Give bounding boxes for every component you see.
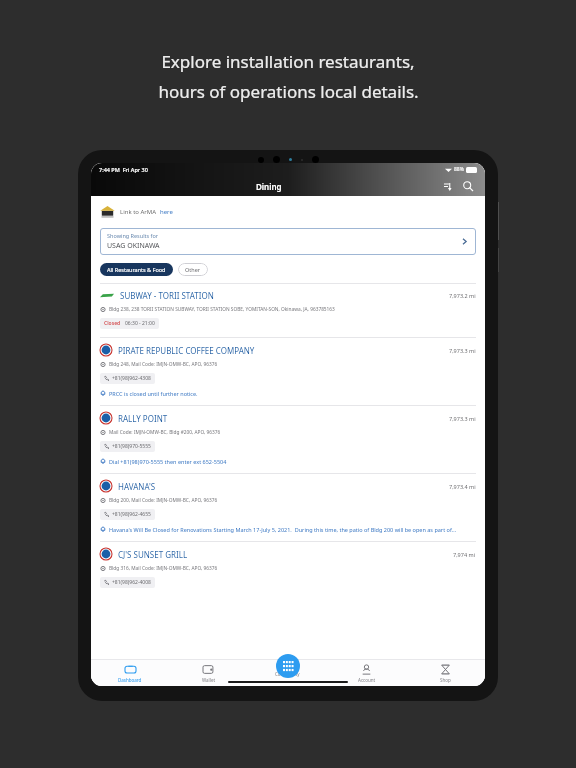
button[interactable]: Account [327,660,406,686]
staticText: Bldg 316, Mail Code: IMJN-OMW-BC, APO, 9… [109,565,218,572]
button[interactable]: RALLY POINT [91,406,485,473]
staticText: 7,973.3 mi [449,415,476,422]
button[interactable]: Sort [439,178,455,194]
button[interactable]: HAVANA'S [91,474,485,541]
button[interactable]: Showing Results for [100,228,476,255]
staticText: Mail Code: IMJN-OMW-BC, Bldg #200, APO, … [109,429,221,436]
button[interactable]: SUBWAY - TORII STATION [91,284,485,337]
staticText: CJ'S SUNSET GRILL [118,549,188,560]
staticText: Bldg 200, Mail Code: IMJN-OMW-BC, APO, 9… [109,497,218,504]
staticText: HAVANA'S [118,481,156,492]
staticText: hours of operations local details. [158,80,419,103]
staticText: Bldg 248, Mail Code: IMJN-OMW-BC, APO, 9… [109,361,218,368]
staticText: PRCC is closed until further notice. [109,390,198,397]
staticText: +81(98)962-4308 [112,375,151,382]
staticText: Account [358,677,376,683]
staticText: 06:30 - 21:00 [125,320,155,327]
button[interactable]: Community [248,660,327,686]
staticText: 7:44 PM Fri Apr 30 [99,166,148,173]
button[interactable]: +81(98)962-4008 [100,577,155,588]
staticText: Shop [440,677,451,683]
button[interactable]: +81(98)962-4655 [100,509,155,520]
button[interactable]: Dashboard [91,660,169,686]
staticText: SUBWAY - TORII STATION [120,290,214,301]
staticText: Dial +81(98)970-5555 then enter ext 652-… [109,458,227,465]
button[interactable]: Shop [406,660,485,686]
staticText: +81(98)970-5555 [112,443,151,450]
staticText: +81(98)962-4008 [112,579,151,586]
button[interactable]: +81(98)970-5555 [100,441,155,452]
button[interactable]: Search [460,178,476,194]
staticText: here [160,208,173,216]
staticText: Wallet [202,677,216,683]
staticText: All Restaurants & Food [107,266,166,273]
staticText: 7,973.3 mi [449,347,476,354]
button[interactable]: Other [178,263,208,276]
staticText: 7,973.4 mi [449,483,476,490]
button[interactable]: Link to ArMA [100,204,173,219]
button[interactable]: Wallet [169,660,248,686]
staticText: 88% [454,166,464,173]
staticText: USAG OKINAWA [107,241,160,251]
staticText: Dining [256,181,282,192]
button[interactable]: +81(98)962-4308 [100,373,155,384]
staticText: Community [275,671,300,677]
button[interactable]: Community [276,654,300,678]
staticText: Link to ArMA [120,208,157,216]
button[interactable]: CJ'S SUNSET GRILL [91,542,485,596]
staticText: Havana's Will Be Closed for Renovations … [109,526,457,533]
button[interactable]: PIRATE REPUBLIC COFFEE COMPANY [91,338,485,405]
staticText: +81(98)962-4655 [112,511,151,518]
staticText: Other [185,266,201,273]
staticText: Dashboard [118,677,142,683]
staticText: Showing Results for [107,232,159,239]
staticText: PIRATE REPUBLIC COFFEE COMPANY [118,345,255,356]
staticText: Bldg 238, 238 TORII STATION SUBWAY, TORI… [109,306,335,313]
staticText: RALLY POINT [118,413,168,424]
staticText: 7,974 mi [453,551,476,558]
staticText: Closed [104,320,121,327]
staticText: Explore installation restaurants, [161,50,415,73]
button[interactable]: All Restaurants & Food [100,263,173,276]
staticText: 7,973.2 mi [449,292,476,299]
